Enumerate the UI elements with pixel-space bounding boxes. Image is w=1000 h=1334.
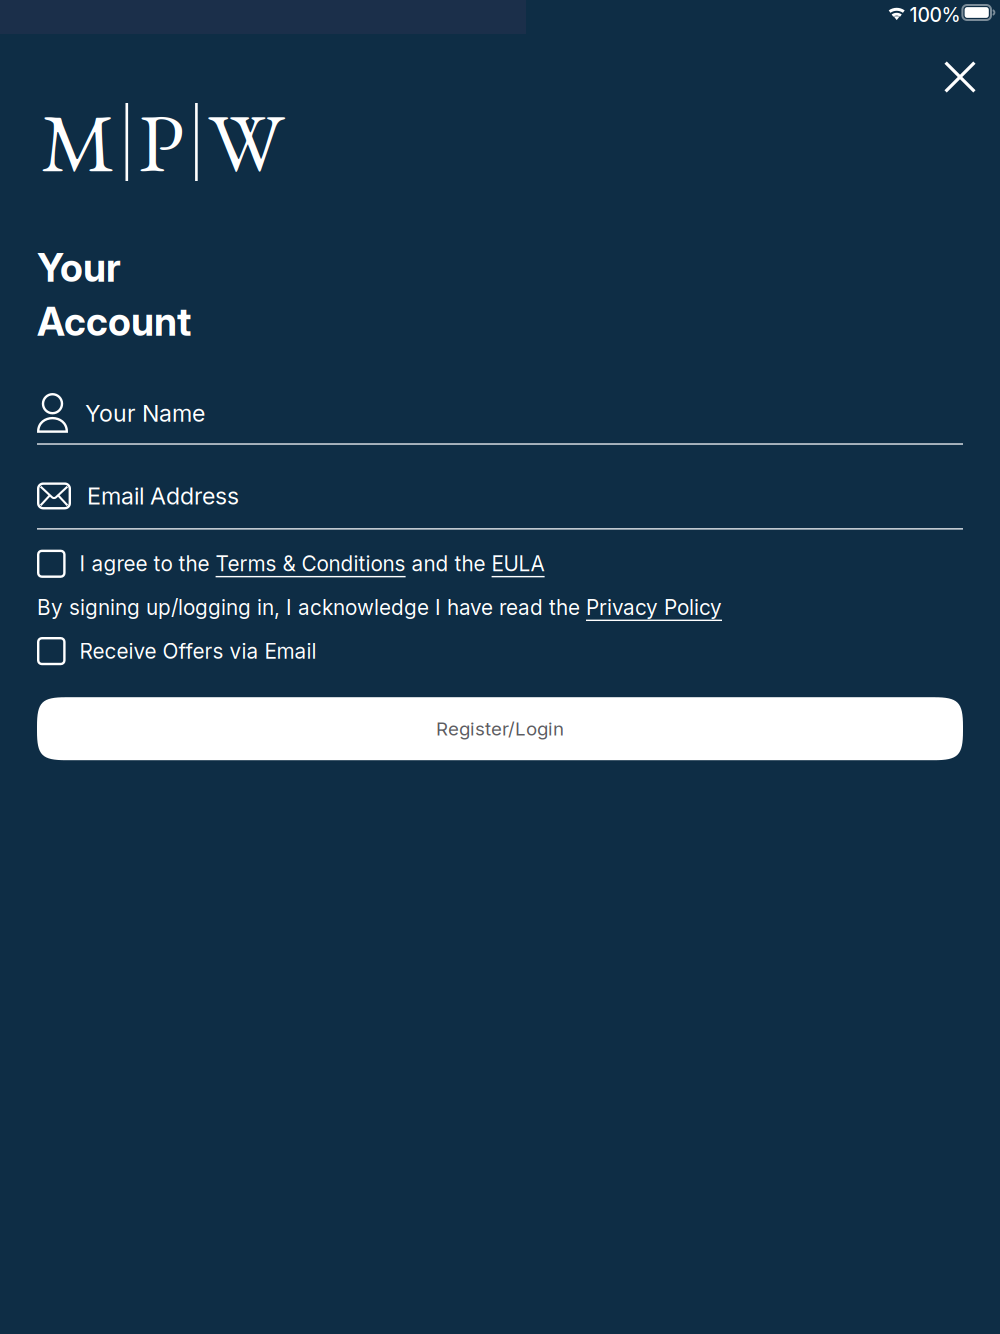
staticText: Terms & Conditions	[216, 551, 406, 576]
button[interactable]: I agree to the	[37, 550, 963, 578]
staticText: I agree to the	[80, 551, 216, 576]
button[interactable]: Receive Offers via Email	[37, 637, 963, 665]
button[interactable]: Privacy Policy	[586, 595, 722, 620]
button[interactable]: Register/Login	[37, 697, 963, 760]
staticText: Receive Offers via Email	[80, 638, 317, 664]
staticText: Account	[37, 298, 191, 345]
staticText: M	[41, 88, 115, 196]
button[interactable]: Email Address	[37, 482, 963, 530]
staticText: P	[139, 88, 185, 196]
staticText: Privacy Policy	[586, 595, 722, 620]
button[interactable]: Close	[933, 50, 987, 104]
button[interactable]: Your Name	[37, 394, 963, 445]
staticText: and the	[406, 551, 492, 576]
staticText: EULA	[492, 551, 545, 576]
button[interactable]: EULA	[492, 551, 545, 576]
staticText: Email Address	[87, 482, 239, 510]
staticText: Your	[37, 244, 121, 291]
staticText: 100%	[909, 3, 960, 27]
staticText: By signing up/logging in, I acknowledge …	[37, 595, 586, 620]
staticText: W	[208, 88, 284, 196]
staticText: Register/Login	[436, 717, 564, 740]
button[interactable]: Terms & Conditions	[216, 551, 406, 576]
staticText: Your Name	[85, 399, 205, 427]
